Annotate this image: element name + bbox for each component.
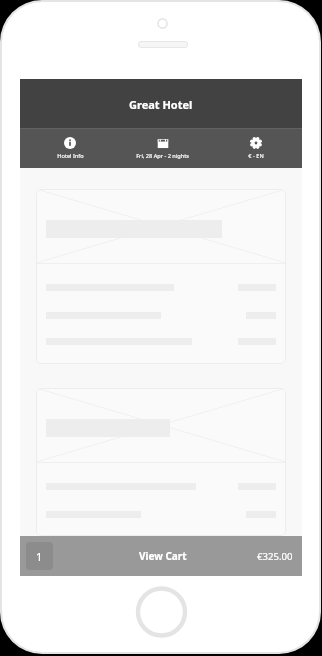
button[interactable]: Currency and language [209,128,302,168]
button[interactable] [36,189,286,364]
staticText: View Cart [139,549,187,563]
button[interactable]: 1 [26,542,53,570]
other: Hotel information [64,137,76,149]
button[interactable]: Select dates [116,128,209,168]
other: Select dates [157,137,169,149]
button[interactable] [36,388,286,536]
staticText: €325.00 [257,550,293,563]
staticText: € - EN [248,152,264,160]
other: Currency and language [250,137,262,149]
button[interactable]: 1 [20,536,302,576]
staticText: Fri, 28 Apr - 2 nights [136,152,189,160]
staticText: Hotel Info [57,152,84,160]
staticText: Great Hotel [129,97,193,112]
button[interactable]: Hotel information [24,128,116,168]
button[interactable]: Great Hotel [20,79,302,128]
staticText: 1 [36,549,43,564]
